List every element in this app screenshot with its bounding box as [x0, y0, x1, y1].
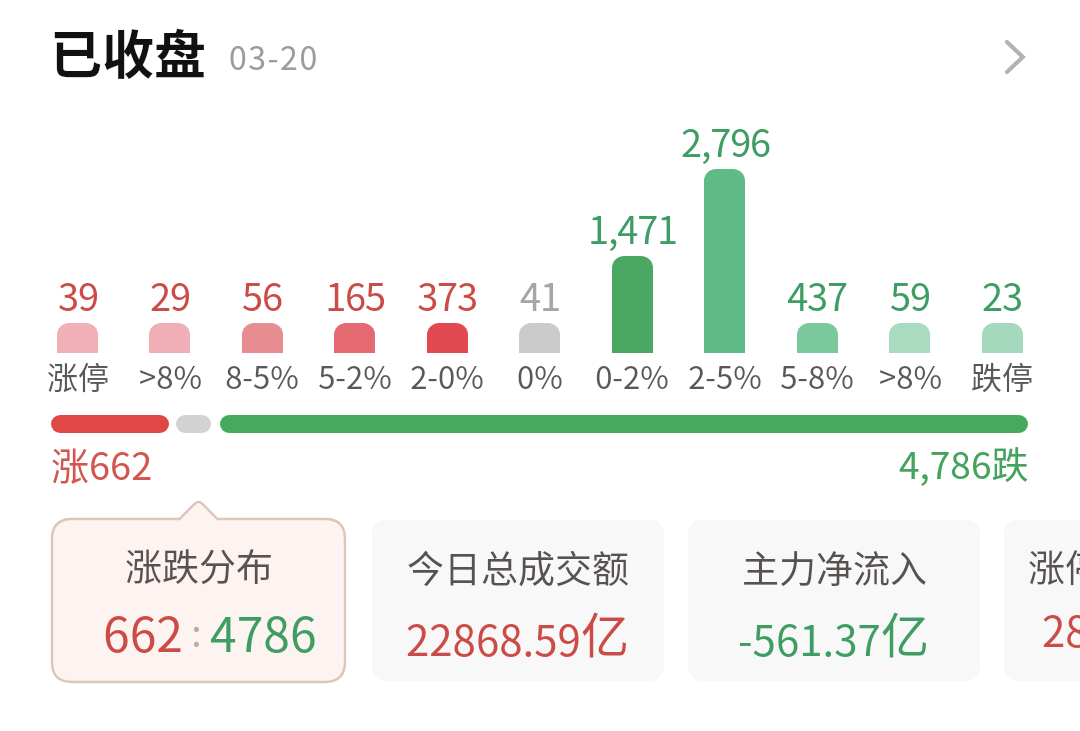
button[interactable]: 0-2% 1,471 [586, 110, 678, 392]
staticText: 今日总成交额 [407, 540, 629, 594]
button[interactable]: Open market breadth details [978, 16, 1050, 88]
button[interactable]: 涨停 39 [31, 110, 123, 392]
staticText: 涨停板块表现 [1028, 539, 1080, 593]
staticText: 主力净流入 [742, 540, 927, 594]
staticText: 5-8% [780, 353, 854, 398]
button[interactable]: 5-8% 437 [771, 110, 863, 392]
staticText: 涨跌分布 [125, 538, 273, 592]
staticText: 4786 [210, 596, 317, 666]
staticText: 亿 [881, 597, 930, 667]
staticText: 59 [890, 267, 930, 322]
button[interactable]: 今日总成交额 [372, 520, 664, 681]
staticText: : [183, 604, 210, 658]
staticText: 03-20 [229, 33, 319, 79]
button[interactable]: 2-5% 2,796 [678, 110, 770, 392]
staticText: >8% [139, 353, 202, 398]
button[interactable]: 5-2% 165 [309, 110, 401, 392]
staticText: 5-2% [318, 353, 392, 398]
staticText: 2-5% [688, 353, 762, 398]
staticText: 4,786跌 [899, 436, 1029, 490]
staticText: 23 [982, 267, 1022, 322]
staticText: 跌停 [971, 353, 1033, 398]
button[interactable]: 0% 41 [494, 110, 586, 392]
button[interactable]: 8-5% 56 [216, 110, 308, 392]
staticText: 8-5% [225, 353, 299, 398]
button[interactable]: 2-0% 373 [401, 110, 493, 392]
button[interactable]: 涨停板块表现 [1004, 520, 1080, 681]
staticText: 29 [150, 267, 190, 322]
button[interactable]: >8% 59 [863, 110, 955, 392]
staticText: >8% [879, 353, 942, 398]
staticText: 涨662 [51, 436, 153, 491]
staticText: 0-2% [595, 353, 669, 398]
staticText: 涨停 [47, 353, 109, 398]
staticText: 41 [520, 267, 560, 322]
staticText: 已收盘 [50, 14, 207, 89]
staticText: 0% [517, 353, 563, 398]
button[interactable]: 已收盘 [0, 0, 1080, 104]
staticText: 22868.59 [406, 607, 581, 668]
button[interactable]: 跌停 23 [956, 110, 1048, 392]
button[interactable]: 主力净流入 [688, 520, 980, 681]
button[interactable]: >8% 29 [124, 110, 216, 392]
staticText: 437 [787, 267, 847, 322]
staticText: 165 [325, 267, 385, 322]
staticText: 1,471 [588, 200, 677, 255]
staticText: 亿 [581, 597, 630, 667]
button[interactable]: 涨跌分布 [52, 502, 345, 682]
staticText: 2,796 [681, 113, 770, 168]
staticText: 28.35% [1042, 598, 1080, 659]
staticText: 662 [103, 596, 183, 666]
staticText: 2-0% [410, 353, 484, 398]
staticText: 56 [242, 267, 282, 322]
staticText: -561.37 [738, 607, 881, 668]
staticText: 373 [417, 267, 477, 322]
staticText: 39 [58, 267, 98, 322]
